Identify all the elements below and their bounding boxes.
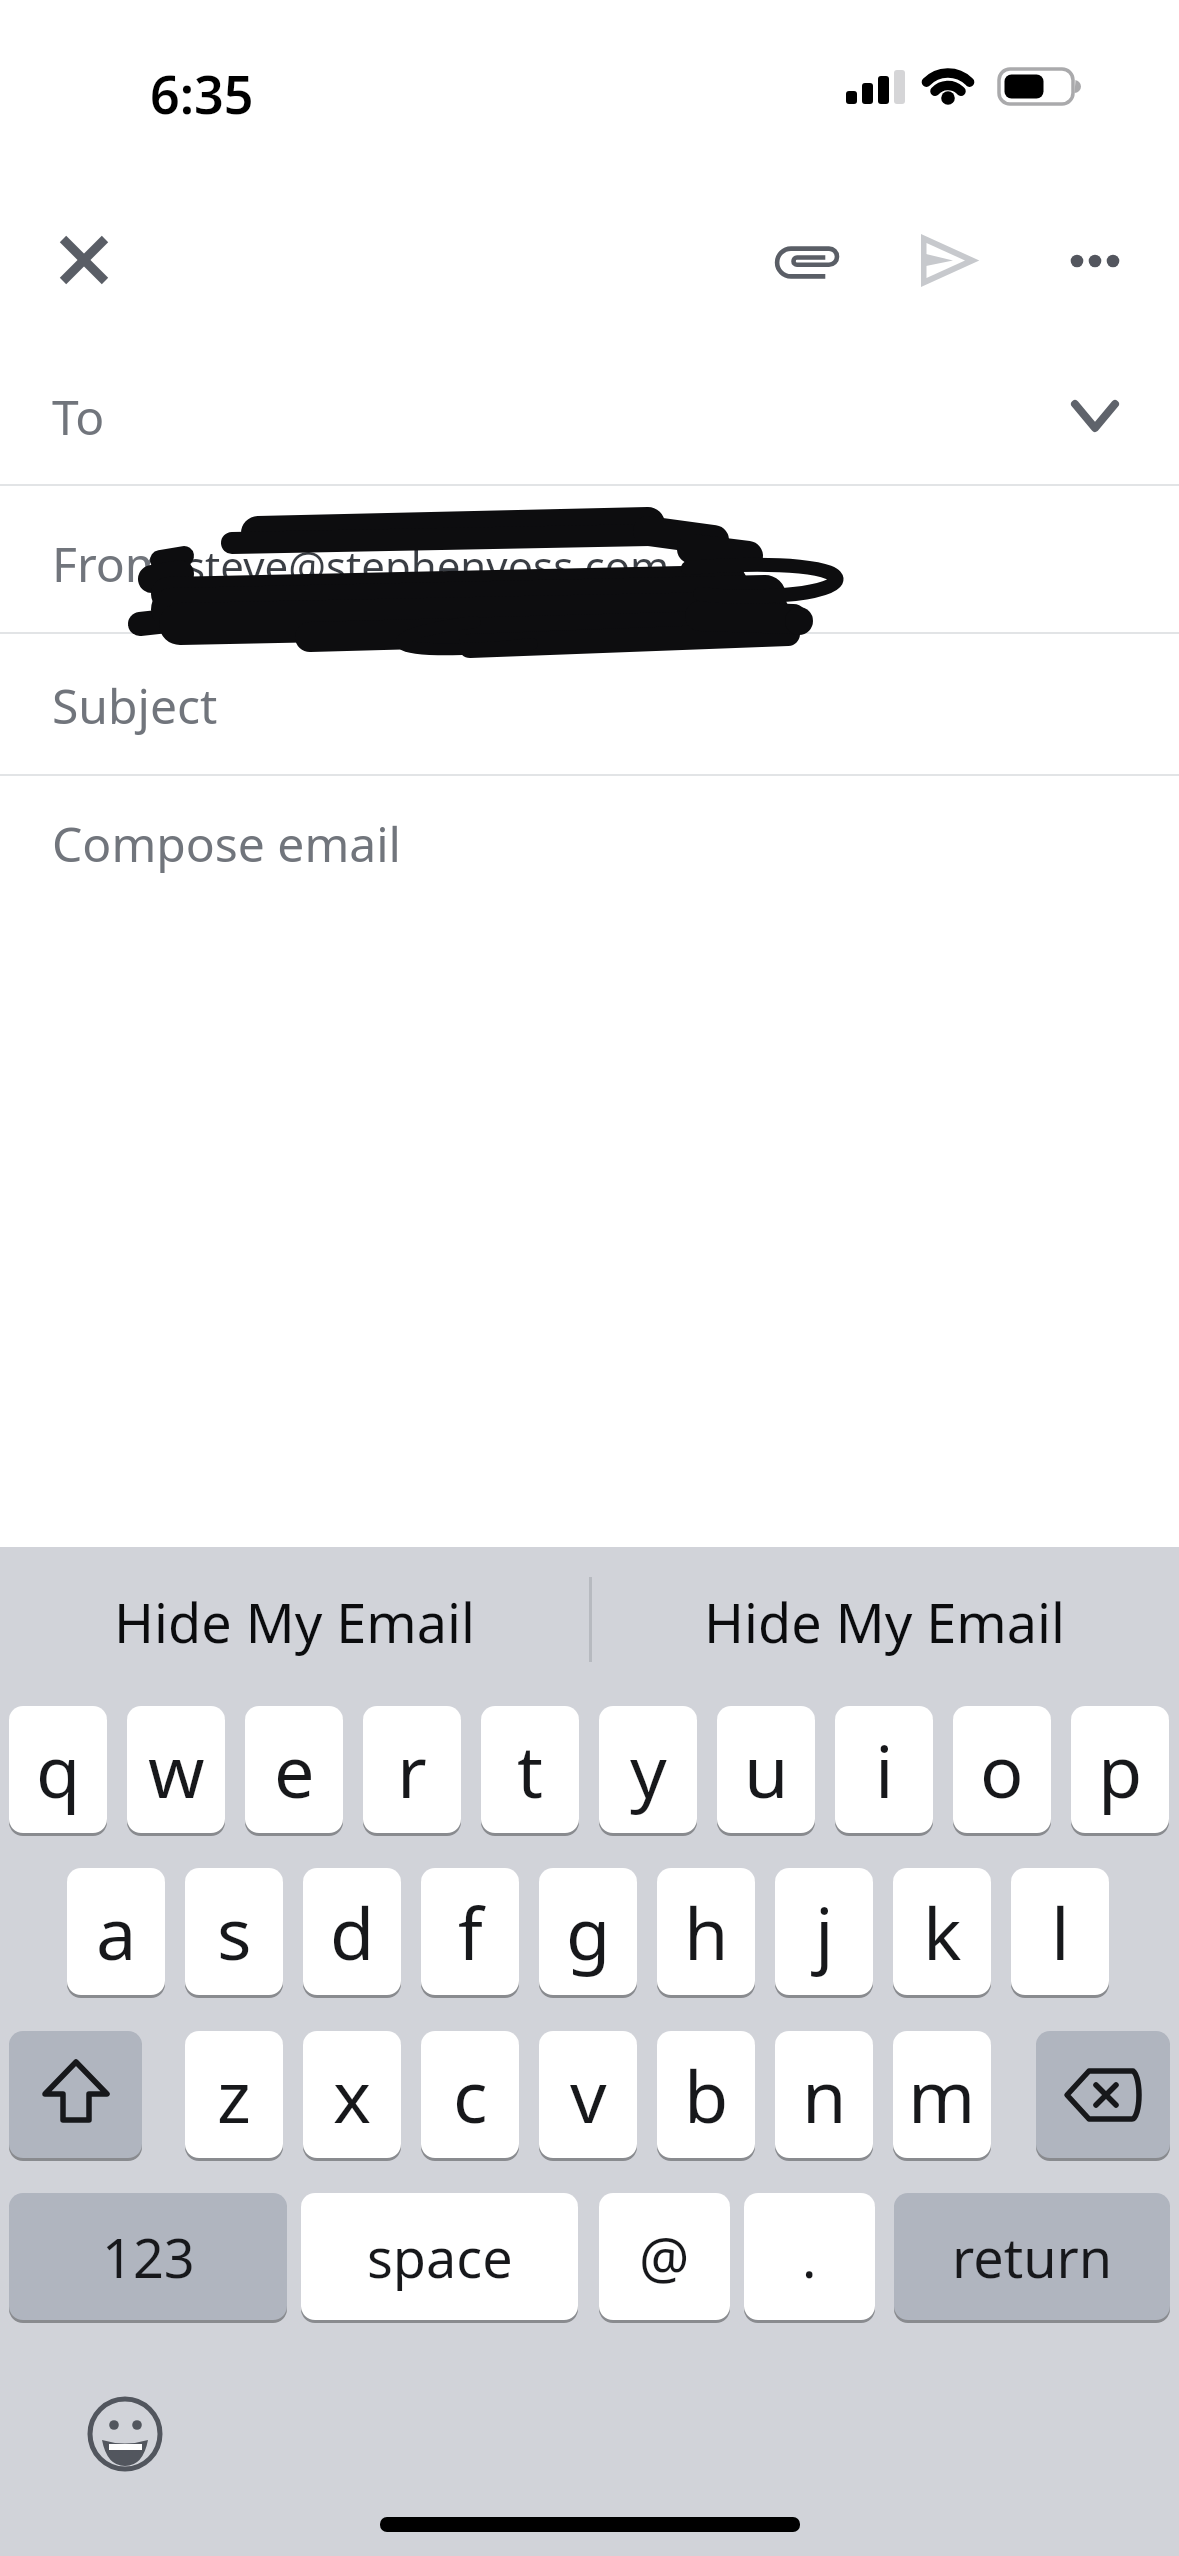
button[interactable]: p — [1071, 1706, 1169, 1833]
button[interactable] — [1065, 249, 1125, 273]
staticText: a — [96, 1883, 137, 1981]
button[interactable]: n — [775, 2031, 873, 2158]
button[interactable] — [910, 225, 990, 295]
button[interactable]: o — [953, 1706, 1051, 1833]
button[interactable] — [1036, 2031, 1170, 2158]
staticText: z — [217, 2046, 251, 2144]
button[interactable]: l — [1011, 1868, 1109, 1995]
button[interactable]: x — [303, 2031, 401, 2158]
staticText: g — [566, 1883, 611, 1981]
staticText: u — [744, 1721, 789, 1819]
staticText: 6:35 — [150, 58, 254, 118]
button[interactable]: t — [481, 1706, 579, 1833]
button[interactable] — [770, 230, 844, 290]
button[interactable]: q — [9, 1706, 107, 1833]
staticText: r — [397, 1721, 427, 1819]
staticText: o — [980, 1721, 1024, 1819]
button[interactable]: c — [421, 2031, 519, 2158]
staticText: From — [52, 531, 170, 596]
staticText: l — [1051, 1883, 1070, 1981]
button[interactable]: e — [245, 1706, 343, 1833]
staticText: p — [1098, 1721, 1143, 1819]
staticText: Subject — [52, 673, 218, 738]
staticText: w — [148, 1721, 205, 1819]
staticText: To — [52, 384, 105, 449]
staticText: return — [952, 2220, 1113, 2294]
button[interactable]: Hide My Email — [0, 1567, 589, 1677]
button[interactable]: f — [421, 1868, 519, 1995]
staticText: Compose email — [52, 811, 402, 876]
staticText: n — [802, 2046, 847, 2144]
button[interactable]: m — [893, 2031, 991, 2158]
button[interactable] — [0, 634, 1179, 774]
staticText: Hide My Email — [704, 1585, 1065, 1659]
staticText: d — [330, 1883, 375, 1981]
staticText: s — [217, 1883, 252, 1981]
staticText: Hide My Email — [114, 1585, 475, 1659]
staticText: 123 — [102, 2220, 195, 2294]
staticText: v — [570, 2046, 607, 2144]
staticText: c — [453, 2046, 488, 2144]
button[interactable]: return — [894, 2193, 1170, 2320]
button[interactable]: @ — [599, 2193, 730, 2320]
staticText: x — [333, 2046, 372, 2144]
button[interactable]: 123 — [9, 2193, 287, 2320]
staticText: space — [367, 2220, 513, 2294]
button[interactable]: i — [835, 1706, 933, 1833]
button[interactable]: . — [744, 2193, 875, 2320]
staticText: k — [923, 1883, 962, 1981]
staticText: b — [684, 2046, 729, 2144]
button[interactable]: space — [301, 2193, 578, 2320]
staticText: steve@stephenvoss.com — [185, 537, 670, 594]
button[interactable]: s — [185, 1868, 283, 1995]
button[interactable] — [9, 2031, 142, 2158]
button[interactable] — [0, 352, 1179, 482]
button[interactable]: u — [717, 1706, 815, 1833]
button[interactable] — [0, 486, 1179, 632]
staticText: . — [802, 2220, 817, 2294]
staticText: j — [815, 1883, 834, 1981]
button[interactable]: k — [893, 1868, 991, 1995]
button[interactable] — [0, 776, 1179, 936]
button[interactable]: v — [539, 2031, 637, 2158]
staticText: q — [36, 1721, 81, 1819]
button[interactable]: Hide My Email — [590, 1567, 1179, 1677]
button[interactable]: b — [657, 2031, 755, 2158]
staticText: @ — [639, 2219, 690, 2295]
button[interactable]: a — [67, 1868, 165, 1995]
button[interactable]: d — [303, 1868, 401, 1995]
button[interactable]: w — [127, 1706, 225, 1833]
button[interactable]: h — [657, 1868, 755, 1995]
staticText: y — [630, 1721, 667, 1819]
staticText: e — [274, 1721, 315, 1819]
staticText: f — [458, 1883, 483, 1981]
staticText: h — [684, 1883, 729, 1981]
button[interactable] — [85, 2394, 165, 2474]
button[interactable]: r — [363, 1706, 461, 1833]
button[interactable]: y — [599, 1706, 697, 1833]
button[interactable]: g — [539, 1868, 637, 1995]
staticText: m — [908, 2046, 976, 2144]
button[interactable] — [48, 225, 120, 297]
button[interactable]: j — [775, 1868, 873, 1995]
staticText: t — [517, 1721, 543, 1819]
button[interactable]: z — [185, 2031, 283, 2158]
staticText: i — [875, 1721, 894, 1819]
